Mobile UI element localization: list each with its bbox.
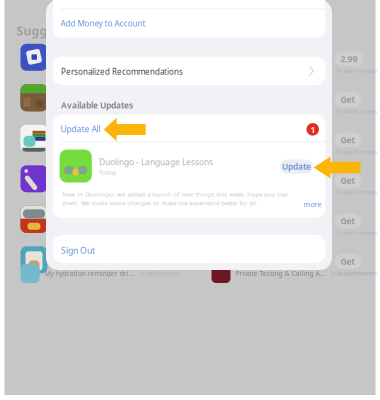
staticText: Suggested [16, 23, 80, 39]
button[interactable]: Get [334, 132, 361, 147]
staticText: In-App Purchases [336, 108, 376, 115]
staticText: Get [340, 215, 355, 227]
staticText: Update [282, 161, 311, 172]
staticText: Duolingo - Language Lessons [99, 156, 213, 167]
staticText: My hydration reminder dri... [44, 269, 134, 278]
staticText: Personalized Recommendations [61, 66, 183, 77]
staticText: In-App Purchases [336, 189, 376, 196]
button[interactable]: Update All [60, 124, 101, 134]
staticText: In-App Purchases [336, 68, 376, 74]
button[interactable]: Add Money to Account [60, 18, 146, 28]
staticText: In-App Purchases [336, 149, 376, 155]
staticText: Available Updates [61, 100, 133, 111]
staticText: In-App Purchases [139, 270, 179, 277]
staticText: Get [340, 94, 355, 105]
staticText: New in Duolingo: we added a bunch of new… [62, 190, 287, 198]
staticText: Private Texting & Calling A... [235, 269, 325, 278]
button[interactable]: Personalized Recommendations [53, 57, 325, 85]
staticText: In-App Purchases [330, 270, 370, 277]
button[interactable]: Get [334, 254, 361, 269]
staticText: Get [340, 256, 355, 267]
staticText: In-App Purchases [336, 270, 376, 277]
staticText: Get [340, 134, 355, 146]
button[interactable]: Get [334, 213, 361, 228]
button[interactable]: 2.99 [334, 51, 363, 66]
staticText: In-App Purchases [336, 230, 376, 236]
button[interactable]: Update [280, 159, 313, 174]
staticText: Sign Out [61, 245, 95, 256]
button[interactable]: more [304, 200, 322, 208]
button[interactable]: Get [334, 92, 361, 107]
staticText: them. We made some changes to make the e… [62, 199, 258, 207]
staticText: Update All [60, 123, 100, 135]
staticText: Get [340, 175, 355, 186]
staticText: more [304, 199, 322, 209]
staticText: Add Money to Account [60, 18, 145, 29]
button[interactable]: Get [334, 173, 361, 188]
staticText: 1 [310, 123, 315, 136]
button[interactable]: Sign Out [53, 235, 325, 263]
staticText: 2.99 [340, 53, 357, 65]
staticText: Today [99, 168, 116, 176]
